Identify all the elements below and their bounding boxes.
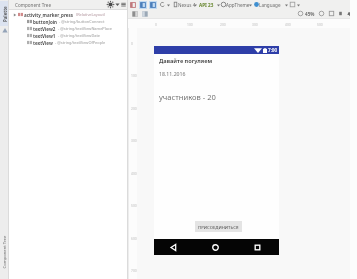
button[interactable]: Pan bbox=[337, 10, 344, 17]
staticText: activity_marker_press bbox=[24, 12, 74, 18]
button[interactable]: activity_marker_press bbox=[9, 11, 128, 18]
button[interactable]: Collapse bbox=[114, 1, 121, 8]
staticText: 300 bbox=[131, 138, 137, 142]
button[interactable]: Zoom in bbox=[318, 10, 325, 17]
button[interactable]: textView1 bbox=[9, 32, 128, 39]
button[interactable]: Refresh bbox=[159, 1, 166, 8]
staticText: Component Tree bbox=[15, 2, 52, 8]
staticText: AppTheme bbox=[226, 2, 250, 8]
staticText: - @string/textViewDate bbox=[58, 33, 101, 38]
button[interactable]: Layout variants bbox=[289, 1, 296, 8]
staticText: 0 bbox=[131, 41, 133, 45]
button[interactable]: textView2 bbox=[9, 25, 128, 32]
staticText: ПРИСОЕДИНИТЬСЯ bbox=[198, 224, 239, 230]
staticText: 100 bbox=[187, 22, 193, 26]
staticText: 7:00 bbox=[268, 47, 278, 53]
staticText: Component Tree bbox=[1, 235, 7, 268]
staticText: - @string/buttonConnect bbox=[59, 19, 105, 24]
staticText: 400 bbox=[131, 171, 137, 175]
staticText: 700 bbox=[131, 268, 137, 272]
staticText: 600 bbox=[131, 236, 137, 240]
staticText: 400 bbox=[285, 22, 291, 26]
staticText: Language bbox=[259, 2, 281, 8]
button[interactable]: View mode bbox=[149, 1, 157, 9]
staticText: 300 bbox=[252, 22, 258, 26]
button[interactable]: buttonJoin bbox=[9, 18, 128, 25]
staticText: 500 bbox=[131, 203, 137, 207]
staticText: textView1 bbox=[33, 33, 56, 39]
button[interactable]: textView bbox=[9, 39, 128, 46]
staticText: API 23 bbox=[199, 2, 214, 8]
button[interactable]: Zoom to fit bbox=[328, 10, 335, 17]
button[interactable]: View mode bbox=[139, 1, 147, 9]
staticText: 45% bbox=[305, 11, 315, 17]
staticText: buttonJoin bbox=[33, 19, 57, 25]
button[interactable]: View mode bbox=[129, 1, 137, 9]
staticText: 200 bbox=[220, 22, 226, 26]
staticText: 0 bbox=[155, 22, 157, 26]
button[interactable] bbox=[0, 1, 9, 26]
staticText: Palette bbox=[2, 6, 8, 22]
staticText: 500 bbox=[317, 22, 323, 26]
button[interactable]: Back bbox=[168, 242, 179, 253]
staticText: 100 bbox=[131, 73, 137, 77]
button[interactable]: Hide bbox=[120, 1, 127, 8]
button[interactable]: Zoom out bbox=[297, 10, 304, 17]
staticText: 18.11.2016 bbox=[159, 70, 186, 77]
button[interactable]: Recent apps bbox=[252, 242, 263, 253]
staticText: Давайте погуляем bbox=[159, 57, 213, 65]
staticText: участников - 20 bbox=[159, 92, 216, 102]
button[interactable]: Component Tree bbox=[0, 225, 9, 279]
button[interactable]: Design view bbox=[131, 10, 139, 18]
button[interactable]: Blueprint view bbox=[141, 10, 149, 18]
staticText: (RelativeLayout) bbox=[76, 12, 106, 17]
button[interactable]: ПРИСОЕДИНИТЬСЯ bbox=[195, 221, 242, 232]
staticText: - @string/textViewNamePlace bbox=[58, 26, 112, 31]
staticText: textView bbox=[33, 40, 53, 46]
button[interactable]: Notifications bbox=[346, 10, 353, 17]
button[interactable]: Home bbox=[210, 242, 221, 253]
button[interactable]: Settings bbox=[107, 1, 114, 8]
staticText: 200 bbox=[131, 106, 137, 110]
staticText: textView2 bbox=[33, 26, 56, 32]
staticText: - @string/textViewOfPeople bbox=[55, 40, 106, 45]
staticText: Nexus 4 bbox=[178, 2, 196, 8]
